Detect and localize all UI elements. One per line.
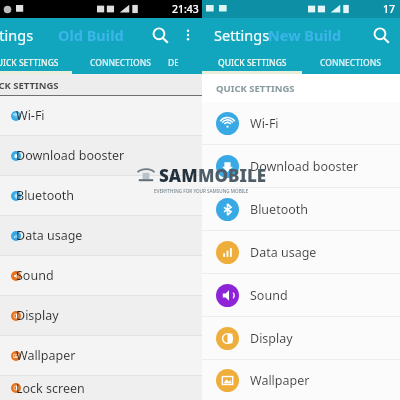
staticText: Download booster (16, 147, 125, 164)
button[interactable]: Download booster (0, 136, 202, 175)
staticText: CONNECTIONS (90, 57, 151, 69)
button[interactable]: Lock screen (0, 376, 202, 400)
button[interactable]: Search (366, 20, 396, 50)
staticText: Settings (214, 25, 270, 45)
staticText: Display (16, 307, 59, 324)
staticText: QUICK SETTINGS (216, 82, 295, 95)
button[interactable]: Wi-Fi (216, 102, 400, 144)
staticText: Lock screen (16, 380, 85, 397)
staticText: MOBILE (198, 164, 267, 187)
button[interactable]: Download booster (216, 145, 400, 187)
staticText: Sound (250, 287, 288, 304)
button[interactable]: Display (0, 296, 202, 335)
staticText: Old Build (58, 25, 124, 45)
staticText: Display (250, 330, 293, 347)
button[interactable]: Wallpaper (0, 336, 202, 375)
staticText: Bluetooth (250, 201, 309, 218)
staticText: DEVICE (168, 57, 178, 69)
staticText: Settings (0, 25, 34, 45)
staticText: Wallpaper (250, 372, 310, 389)
staticText: Sound (16, 267, 54, 284)
button[interactable]: More options (175, 22, 201, 48)
button[interactable]: CONNECTIONS (302, 52, 398, 74)
staticText: 21:43 (172, 2, 199, 16)
button[interactable]: Wi-Fi (0, 96, 202, 135)
staticText: EVERYTHING FOR YOUR SAMSUNG MOBILE (154, 188, 249, 194)
button[interactable]: QUICK SETTINGS (202, 52, 302, 74)
staticText: Wi-Fi (16, 107, 45, 124)
button[interactable]: QUICK SETTINGS (0, 52, 72, 74)
button[interactable]: Data usage (0, 216, 202, 255)
staticText: QUICK SETTINGS (0, 79, 59, 92)
button[interactable]: Sound (0, 256, 202, 295)
staticText: 17 (383, 2, 396, 16)
button[interactable]: Wallpaper (216, 360, 400, 400)
button[interactable]: DEVICE (168, 52, 178, 74)
staticText: Download booster (250, 158, 359, 175)
staticText: Wi-Fi (250, 115, 279, 132)
button[interactable]: Sound (216, 274, 400, 316)
button[interactable]: Search (145, 20, 175, 50)
button[interactable]: Bluetooth (216, 188, 400, 230)
staticText: Bluetooth (16, 187, 75, 204)
staticText: SAM (159, 164, 198, 187)
staticText: QUICK SETTINGS (0, 57, 59, 69)
staticText: New Build (268, 25, 342, 45)
staticText: Data usage (16, 227, 83, 244)
button[interactable]: CONNECTIONS (72, 52, 168, 74)
button[interactable]: Display (216, 317, 400, 359)
staticText: Wallpaper (16, 347, 76, 364)
staticText: CONNECTIONS (320, 57, 381, 69)
button[interactable]: Bluetooth (0, 176, 202, 215)
staticText: Data usage (250, 244, 317, 261)
button[interactable]: Data usage (216, 231, 400, 273)
staticText: QUICK SETTINGS (218, 57, 287, 69)
